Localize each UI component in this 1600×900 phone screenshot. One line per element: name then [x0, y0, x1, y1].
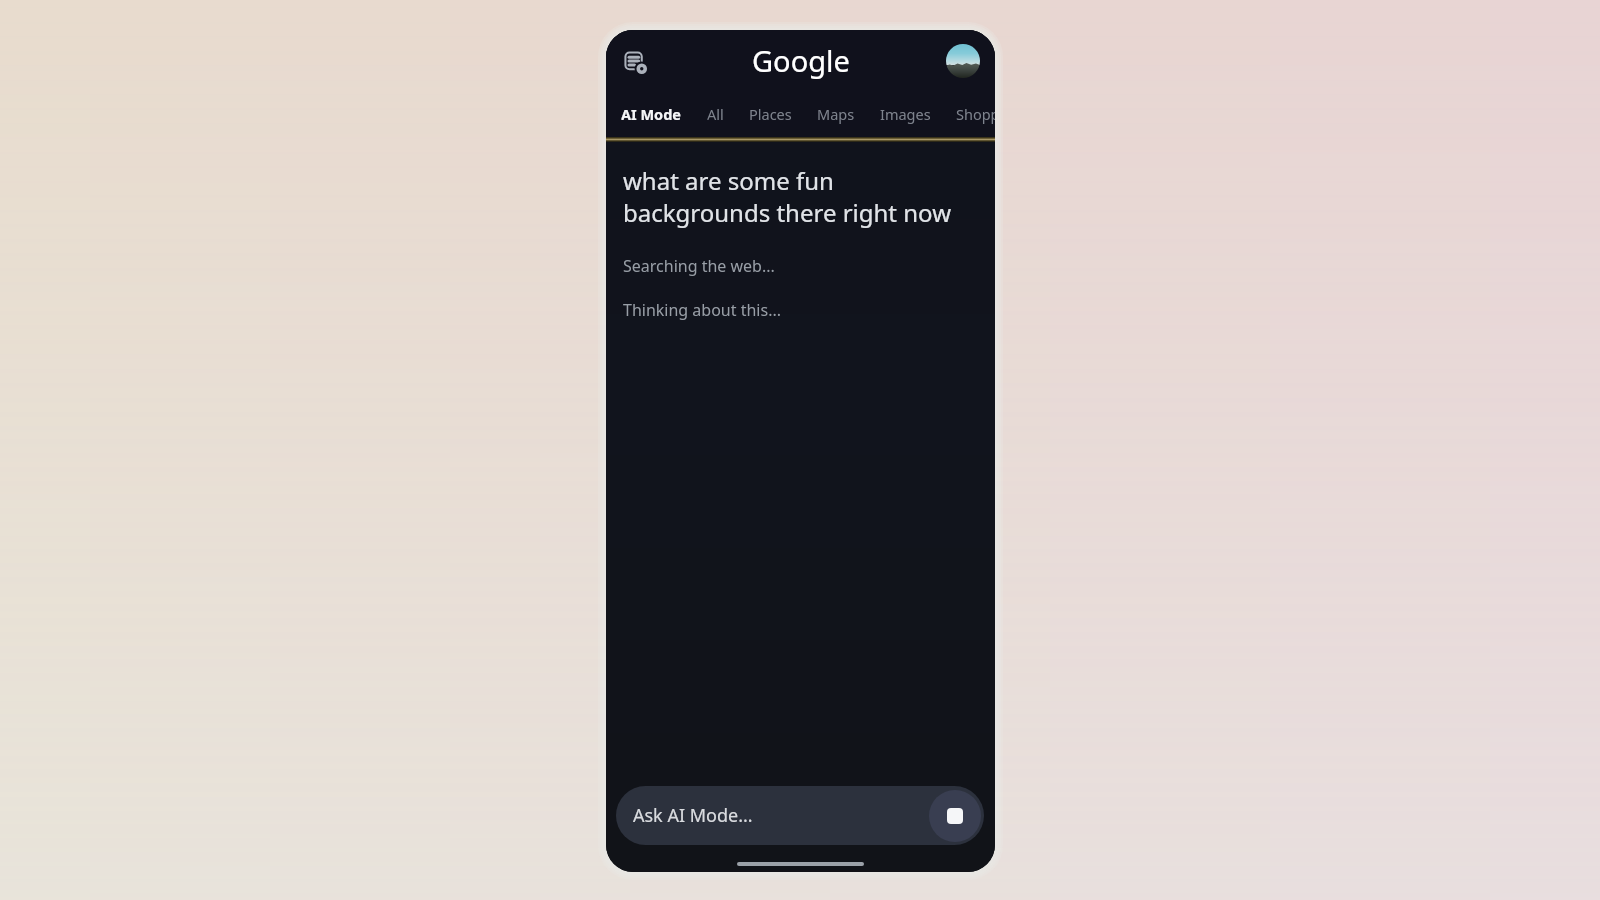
staticText: Google	[752, 41, 850, 80]
staticText: Images	[880, 104, 931, 124]
button[interactable]: Maps	[817, 104, 855, 124]
staticText: Places	[749, 104, 792, 124]
staticText: Thinking about this...	[623, 299, 782, 321]
button[interactable]: Stop generating	[929, 790, 981, 842]
staticText: AI Mode	[621, 104, 682, 124]
button[interactable]: Search history	[619, 46, 653, 80]
button[interactable]: Images	[880, 104, 931, 124]
button[interactable]: Account	[946, 44, 980, 78]
staticText: what are some fun backgrounds there righ…	[623, 164, 952, 229]
button[interactable]: Ask AI Mode...	[616, 786, 984, 845]
staticText: Ask AI Mode...	[633, 803, 753, 828]
button[interactable]: Places	[749, 104, 792, 124]
button[interactable]: All	[707, 104, 724, 124]
staticText: Maps	[817, 104, 855, 124]
staticText: All	[707, 104, 724, 124]
staticText: Shopping	[956, 104, 995, 124]
button[interactable]: AI Mode	[621, 104, 682, 124]
button[interactable]: Shopping	[956, 104, 995, 124]
staticText: Searching the web...	[623, 255, 775, 277]
